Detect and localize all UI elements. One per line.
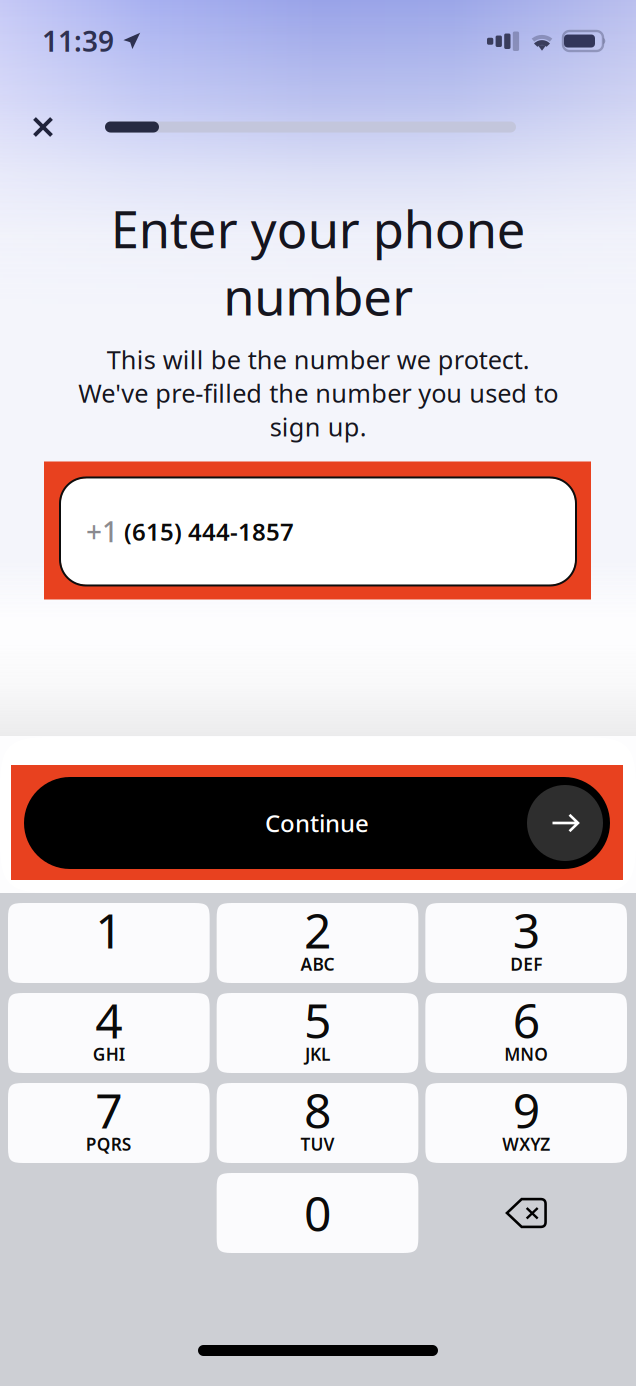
staticText: This will be the number we protect. We'v… — [78, 343, 558, 443]
staticText: 1 — [95, 898, 122, 962]
button[interactable]: 6 — [425, 993, 627, 1073]
staticText: Continue — [265, 807, 369, 839]
staticText: 7 — [95, 1078, 122, 1142]
button[interactable]: Continue — [24, 777, 610, 869]
staticText: DEF — [510, 952, 542, 975]
button[interactable]: Close — [17, 106, 69, 148]
button[interactable]: 4 — [8, 993, 210, 1073]
button[interactable]: Delete — [425, 1173, 627, 1253]
staticText: 4 — [95, 988, 122, 1052]
staticText: TUV — [300, 1132, 334, 1155]
staticText: +1 — [86, 513, 118, 550]
staticText: 3 — [513, 898, 540, 962]
button[interactable]: +1 — [60, 477, 576, 585]
button[interactable]: 0 — [217, 1173, 418, 1253]
staticText: WXYZ — [502, 1132, 550, 1155]
button[interactable]: 5 — [217, 993, 418, 1073]
button[interactable]: 1 — [8, 903, 210, 983]
button[interactable]: 2 — [217, 903, 418, 983]
staticText: 5 — [304, 988, 331, 1052]
staticText: JKL — [305, 1042, 330, 1065]
staticText: Enter your phone number — [110, 195, 525, 330]
staticText: 0 — [304, 1181, 331, 1245]
button[interactable]: 8 — [217, 1083, 418, 1163]
button[interactable]: 3 — [425, 903, 627, 983]
button[interactable]: 7 — [8, 1083, 210, 1163]
staticText: 6 — [513, 988, 540, 1052]
staticText: ABC — [300, 952, 334, 975]
staticText: 11:39 — [42, 22, 114, 60]
staticText: (615) 444-1857 — [124, 516, 294, 547]
staticText: GHI — [93, 1042, 125, 1065]
staticText: PQRS — [86, 1132, 132, 1155]
staticText: 2 — [304, 898, 331, 962]
button[interactable]: 9 — [425, 1083, 627, 1163]
staticText: 9 — [513, 1078, 540, 1142]
staticText: MNO — [504, 1042, 548, 1065]
staticText: 8 — [304, 1078, 331, 1142]
